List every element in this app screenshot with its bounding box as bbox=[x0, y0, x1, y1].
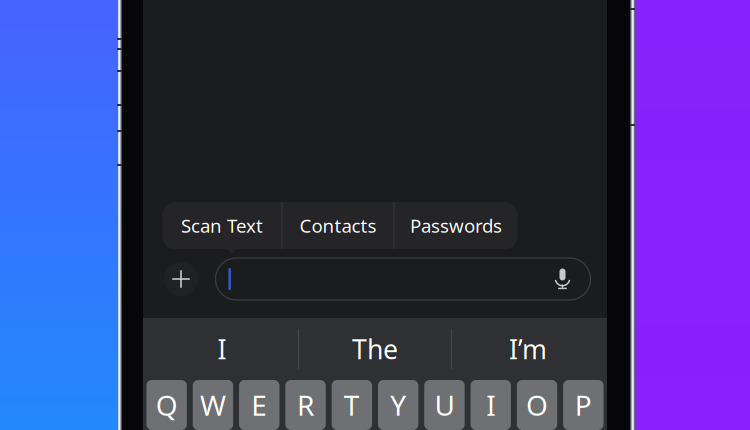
button[interactable]: Q bbox=[146, 380, 187, 430]
button[interactable]: R bbox=[285, 380, 326, 430]
button[interactable]: E bbox=[239, 380, 279, 430]
button[interactable]: Scan Text bbox=[162, 202, 281, 249]
button[interactable]: I bbox=[471, 380, 511, 430]
button[interactable]: P bbox=[563, 380, 604, 430]
staticText: W bbox=[200, 386, 226, 424]
button[interactable]: T bbox=[332, 380, 372, 430]
button[interactable]: The bbox=[299, 318, 451, 380]
staticText: Passwords bbox=[410, 213, 502, 238]
button[interactable]: U bbox=[424, 380, 465, 430]
staticText: R bbox=[297, 386, 314, 424]
staticText: I bbox=[486, 386, 495, 424]
button[interactable]: Passwords bbox=[394, 202, 517, 249]
staticText: I bbox=[217, 331, 226, 367]
button[interactable]: I bbox=[146, 318, 298, 380]
staticText: P bbox=[575, 386, 592, 424]
staticText: Scan Text bbox=[181, 213, 263, 238]
staticText: Contacts bbox=[299, 213, 376, 238]
button[interactable]: Y bbox=[378, 380, 418, 430]
staticText: U bbox=[434, 386, 454, 424]
staticText: O bbox=[526, 386, 548, 424]
staticText: Q bbox=[156, 386, 178, 424]
staticText: The bbox=[352, 331, 398, 367]
staticText: T bbox=[344, 386, 360, 424]
button[interactable]: W bbox=[193, 380, 233, 430]
button[interactable]: Add attachment bbox=[162, 260, 200, 298]
button[interactable]: Dictate bbox=[547, 262, 577, 296]
button[interactable]: iMessage bbox=[215, 258, 590, 300]
staticText: E bbox=[251, 386, 267, 424]
button[interactable]: Contacts bbox=[282, 202, 393, 249]
staticText: I’m bbox=[509, 331, 547, 367]
button[interactable]: O bbox=[517, 380, 557, 430]
staticText: Y bbox=[390, 386, 406, 424]
button[interactable]: I’m bbox=[452, 318, 604, 380]
